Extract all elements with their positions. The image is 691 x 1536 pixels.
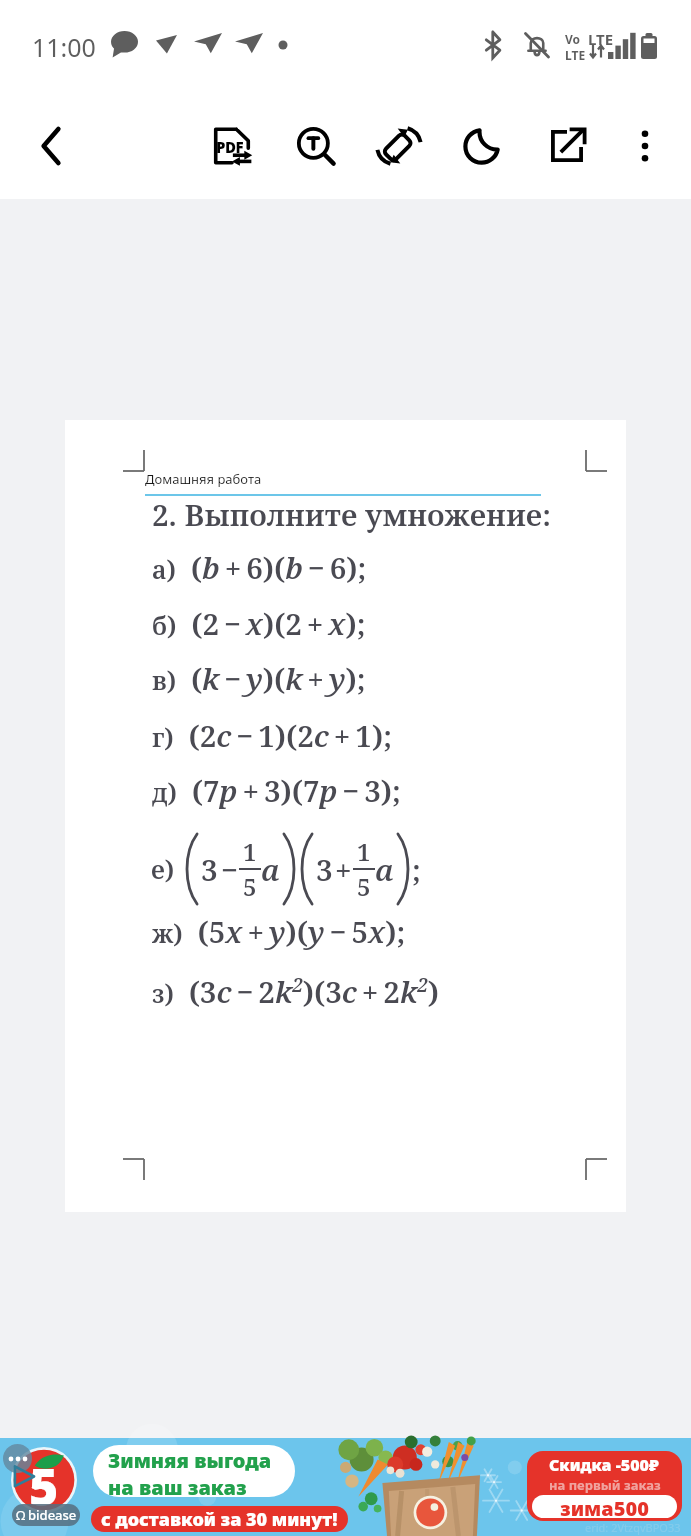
staticText: а) (b + 6)(b − 6);	[152, 547, 367, 587]
staticText: Зимняя выгода	[108, 1447, 272, 1474]
button[interactable]: Search text	[281, 110, 351, 182]
staticText: ж) (5x + y)(y − 5x);	[152, 911, 406, 951]
staticText: 5	[243, 870, 257, 903]
staticText: bidease	[28, 1506, 77, 1524]
staticText: 1	[357, 835, 371, 868]
staticText: Домашняя работа	[145, 470, 262, 488]
staticText: д) (7p + 3)(7p − 3);	[152, 770, 401, 810]
button[interactable]: Advertisement banner	[0, 1438, 691, 1536]
staticText: зима500	[560, 1495, 649, 1518]
staticText: 5	[357, 870, 371, 903]
staticText: ;	[412, 849, 421, 889]
staticText: 5	[29, 1452, 59, 1518]
staticText: 1	[243, 835, 257, 868]
staticText: б) (2 − x)(2 + x);	[152, 603, 366, 643]
button[interactable]: More options	[610, 110, 680, 182]
staticText: в) (k − y)(k + y);	[152, 658, 366, 698]
staticText: 2. Выполните умножение:	[152, 494, 551, 534]
staticText: Vo	[565, 31, 581, 47]
button[interactable]: Open in another app	[532, 110, 602, 182]
staticText: PDF	[216, 137, 244, 157]
staticText: с доставкой за 30 минут!	[101, 1507, 338, 1532]
staticText: +	[335, 849, 352, 889]
button[interactable]: Rotate screen	[364, 110, 434, 182]
button[interactable]: Back	[15, 110, 87, 182]
staticText: Скидка -500₽	[549, 1454, 660, 1476]
staticText: LTE	[588, 29, 614, 49]
staticText: е)	[151, 852, 175, 886]
staticText: a	[375, 849, 394, 889]
staticText: г) (2c − 1)(2c + 1);	[152, 715, 392, 755]
staticText: 3	[316, 849, 333, 889]
staticText: −	[221, 849, 238, 889]
staticText: erid: 2VtzqvBPO33	[585, 1520, 681, 1535]
staticText: з) (3c − 2k2)(3c + 2k2)	[152, 971, 440, 1011]
staticText: на ваш заказ	[108, 1474, 247, 1497]
staticText: LTE	[565, 47, 586, 63]
button[interactable]: Convert to PDF	[197, 110, 267, 182]
staticText: на первый заказ	[549, 1476, 661, 1494]
staticText: 11:00	[32, 30, 96, 64]
staticText: Ω	[16, 1506, 26, 1524]
button[interactable]: Night mode	[448, 110, 518, 182]
staticText: a	[261, 849, 280, 889]
button[interactable]: Домашняя работа	[65, 420, 626, 1212]
staticText: 3	[201, 849, 218, 889]
